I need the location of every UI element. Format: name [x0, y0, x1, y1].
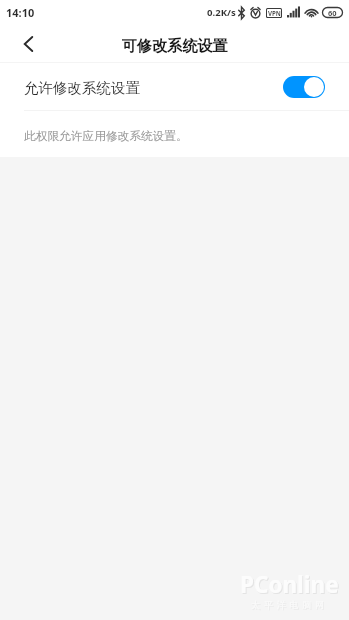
staticText: 此权限允许应用修改系统设置。	[24, 129, 188, 144]
button[interactable]: Back	[0, 24, 56, 63]
staticText: 60	[328, 8, 337, 18]
staticText: 太平洋电脑网	[251, 599, 328, 610]
staticText: 14:10	[6, 5, 35, 20]
staticText: PConline	[240, 569, 339, 600]
staticText: 可修改系统设置	[122, 36, 228, 55]
staticText: PConline	[241, 570, 340, 601]
staticText: 允许修改系统设置	[24, 79, 140, 97]
button[interactable]: Allow modify system settings toggle	[283, 76, 325, 98]
staticText: 0.2K/s	[207, 6, 236, 19]
staticText: VPN	[268, 9, 281, 17]
staticText: 太平洋电脑网	[252, 600, 329, 611]
button[interactable]: 允许修改系统设置	[0, 63, 349, 110]
